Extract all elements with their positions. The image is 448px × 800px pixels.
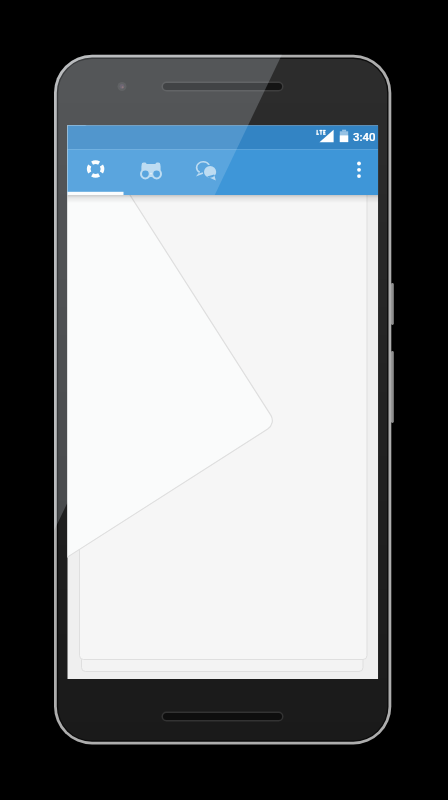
- button[interactable]: Chats: [179, 148, 235, 195]
- button[interactable]: Discover: [67, 148, 123, 195]
- button[interactable]: Explore: [123, 148, 179, 195]
- staticText: 3:40: [353, 130, 376, 143]
- button[interactable]: More options: [347, 157, 372, 182]
